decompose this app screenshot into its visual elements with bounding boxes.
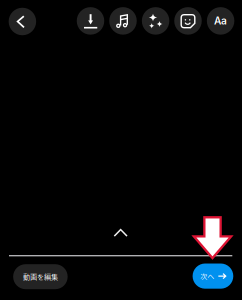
button[interactable]: Text style bbox=[207, 7, 235, 35]
staticText: 次へ bbox=[200, 271, 214, 281]
button[interactable]: Music bbox=[109, 7, 137, 35]
button[interactable]: Show more bbox=[101, 221, 141, 245]
staticText: Aa bbox=[214, 15, 227, 27]
button[interactable]: 動画を編集 bbox=[13, 264, 68, 289]
button[interactable]: 次へ bbox=[193, 263, 233, 289]
staticText: 動画を編集 bbox=[23, 272, 58, 282]
button[interactable]: Stickers bbox=[174, 7, 202, 35]
button[interactable]: Back bbox=[8, 7, 36, 35]
button[interactable]: Download bbox=[76, 7, 104, 35]
button[interactable]: Effects bbox=[142, 7, 170, 35]
